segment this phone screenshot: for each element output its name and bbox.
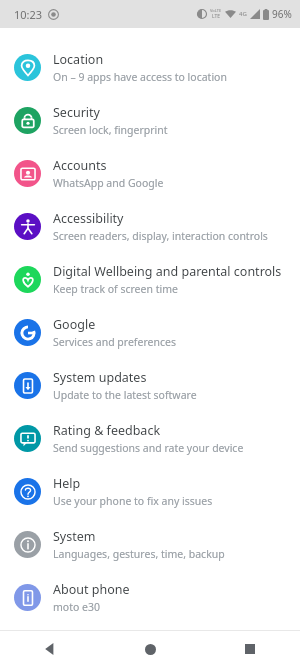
staticText: About phone <box>53 581 130 598</box>
staticText: Rating & feedback <box>53 422 161 439</box>
staticText: Keep track of screen time <box>53 282 178 296</box>
staticText: Accounts <box>53 157 107 174</box>
staticText: Accessibility <box>53 210 124 227</box>
staticText: Languages, gestures, time, backup <box>53 547 225 561</box>
staticText: Security <box>53 104 100 121</box>
staticText: Use your phone to fix any issues <box>53 494 213 508</box>
button[interactable]: System updates <box>0 359 300 412</box>
staticText: Location <box>53 51 104 68</box>
staticText: Digital Wellbeing and parental controls <box>53 263 282 280</box>
staticText: Screen lock, fingerprint <box>53 123 168 137</box>
staticText: Google <box>53 316 96 333</box>
staticText: WhatsApp and Google <box>53 176 164 190</box>
staticText: Help <box>53 475 81 492</box>
button[interactable]: Google <box>0 306 300 359</box>
button[interactable]: Location <box>0 41 300 94</box>
staticText: LTE <box>212 13 221 20</box>
button[interactable]: Recent apps <box>200 631 300 667</box>
staticText: moto e30 <box>53 600 100 614</box>
button[interactable]: Home <box>100 631 200 667</box>
button[interactable]: About phone <box>0 571 300 624</box>
staticText: Services and preferences <box>53 335 176 349</box>
button[interactable]: Digital Wellbeing and parental controls <box>0 253 300 306</box>
staticText: System <box>53 528 96 545</box>
staticText: 96% <box>272 7 292 21</box>
button[interactable]: Accounts <box>0 147 300 200</box>
staticText: System updates <box>53 369 147 386</box>
staticText: Update to the latest software <box>53 388 197 402</box>
button[interactable]: Back <box>0 631 100 667</box>
button[interactable]: Rating & feedback <box>0 412 300 465</box>
staticText: VoLTE <box>210 8 222 13</box>
staticText: 4G <box>239 10 247 18</box>
button[interactable]: Help <box>0 465 300 518</box>
button[interactable]: Security <box>0 94 300 147</box>
staticText: Screen readers, display, interaction con… <box>53 229 268 243</box>
button[interactable]: Accessibility <box>0 200 300 253</box>
staticText: On – 9 apps have access to location <box>53 70 227 84</box>
staticText: Send suggestions and rate your device <box>53 441 244 455</box>
button[interactable]: System <box>0 518 300 571</box>
staticText: 10:23 <box>14 7 43 22</box>
